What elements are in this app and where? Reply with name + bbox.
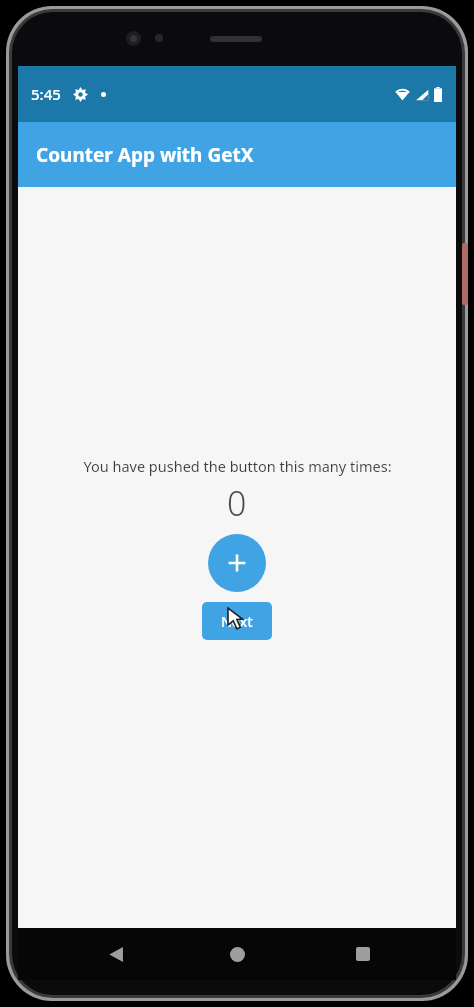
staticText: Counter App with GetX bbox=[36, 142, 254, 168]
button[interactable]: Recent apps bbox=[337, 928, 389, 980]
staticText: You have pushed the button this many tim… bbox=[83, 456, 392, 476]
button[interactable]: Next bbox=[202, 602, 272, 640]
button[interactable]: Increment bbox=[208, 534, 266, 592]
staticText: Next bbox=[221, 612, 253, 631]
staticText: 5:45 bbox=[31, 84, 61, 104]
button[interactable]: Home bbox=[211, 928, 263, 980]
staticText: 0 bbox=[227, 480, 247, 526]
button[interactable]: Back bbox=[90, 928, 142, 980]
